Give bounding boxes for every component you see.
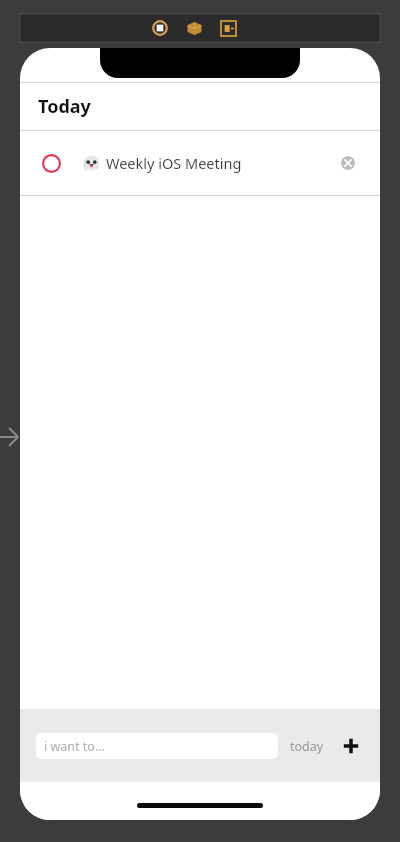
- button[interactable]: i want to...: [36, 733, 278, 759]
- button[interactable]: Add task: [338, 733, 364, 759]
- button[interactable]: Delete: [334, 149, 362, 177]
- button[interactable]: Next: [0, 420, 20, 454]
- button[interactable]: Mark complete: [20, 131, 380, 195]
- button[interactable]: Select element: [148, 16, 172, 40]
- staticText: Today: [38, 94, 91, 119]
- staticText: Weekly iOS Meeting: [106, 153, 242, 173]
- button[interactable]: today: [290, 731, 324, 761]
- button[interactable]: Mark complete: [38, 150, 64, 176]
- button[interactable]: 3D inspector: [182, 16, 206, 40]
- button[interactable]: Toggle panel: [216, 16, 240, 40]
- staticText: today: [290, 738, 324, 755]
- staticText: i want to...: [44, 738, 105, 755]
